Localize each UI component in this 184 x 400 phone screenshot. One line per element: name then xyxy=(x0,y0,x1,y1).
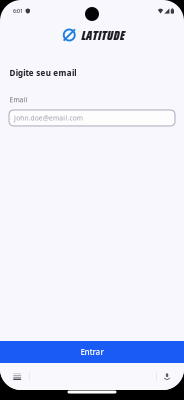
button[interactable]: Voice input xyxy=(157,363,183,389)
staticText: LATITUDE xyxy=(81,24,125,46)
staticText: Digite seu email xyxy=(9,67,76,78)
staticText: John.doe@email.com xyxy=(14,114,83,122)
staticText: Entrar xyxy=(80,347,103,357)
button[interactable]: Switch keyboard xyxy=(2,363,29,389)
staticText: 6:01 xyxy=(13,7,23,15)
button[interactable]: Entrar xyxy=(0,341,184,363)
staticText: Email xyxy=(9,95,27,104)
